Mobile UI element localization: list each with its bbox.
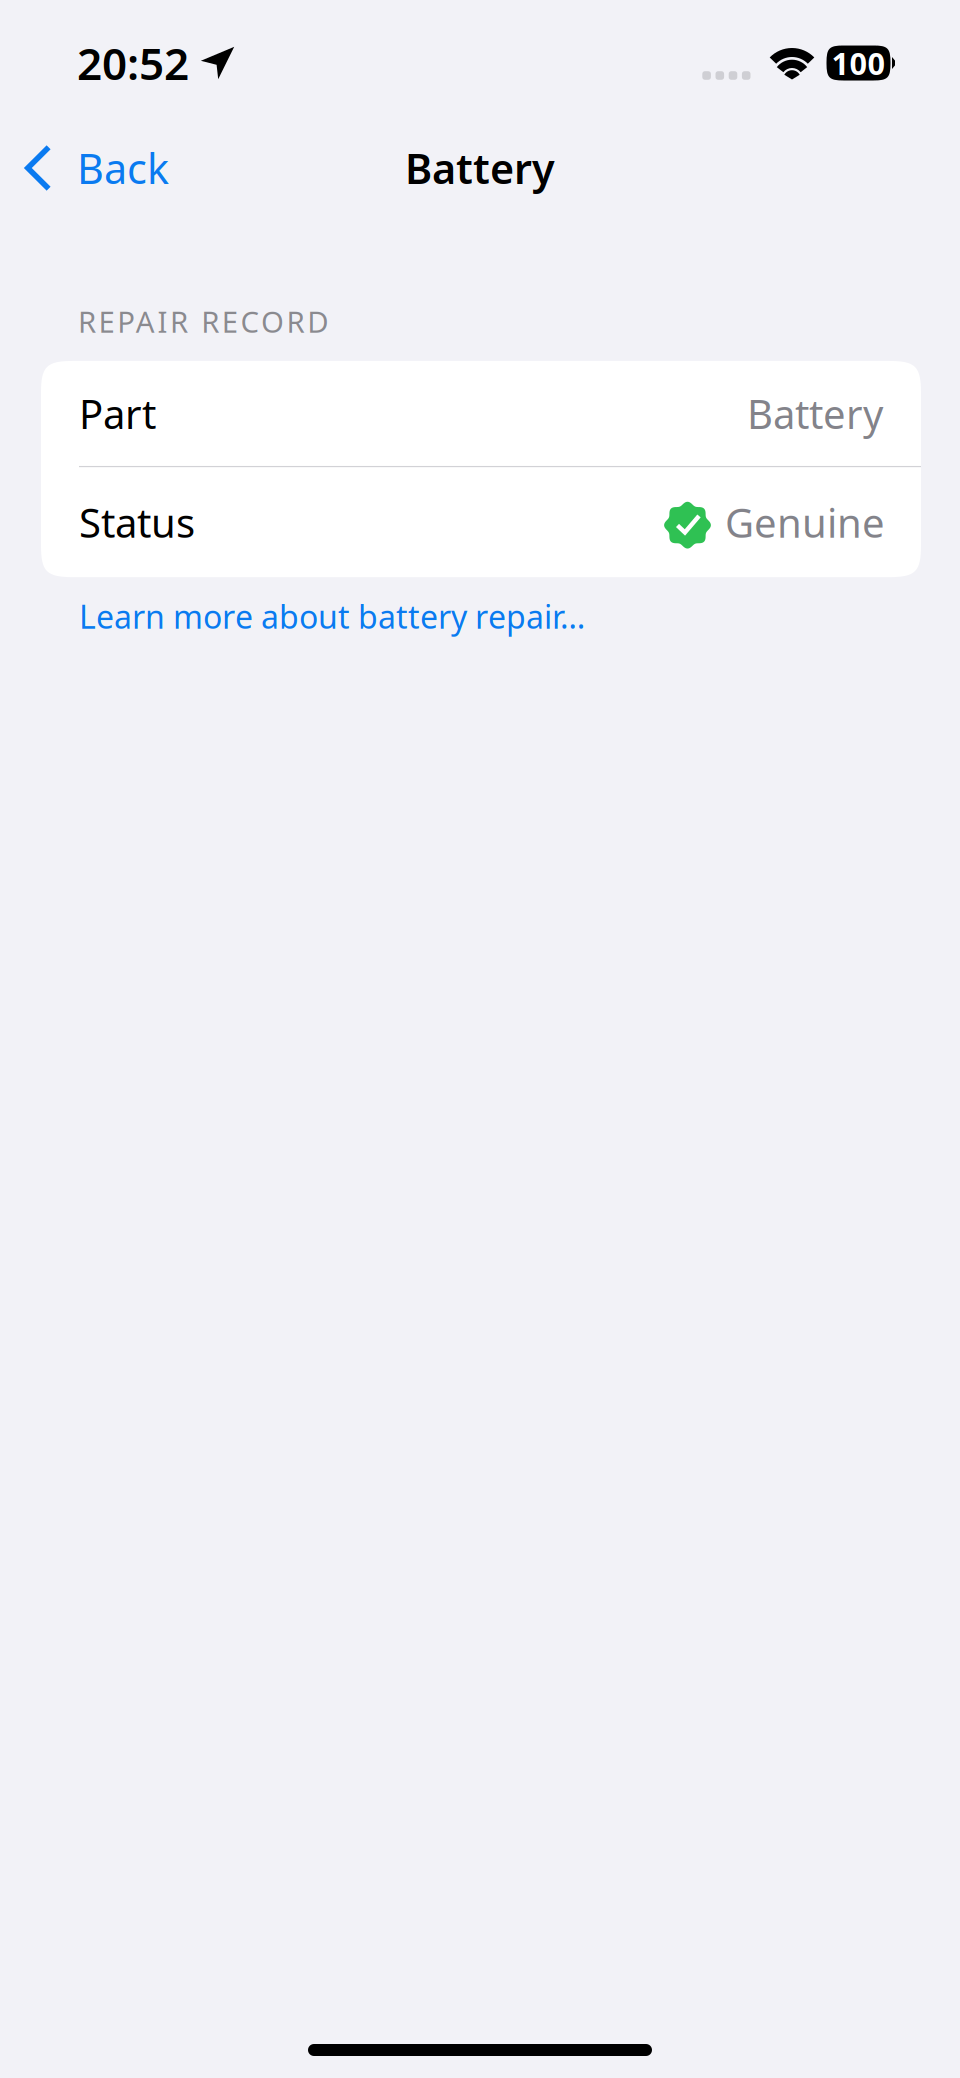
staticText: Battery: [747, 387, 883, 440]
staticText: REPAIR RECORD: [78, 302, 328, 341]
button[interactable]: Back: [0, 132, 187, 204]
staticText: Part: [79, 387, 156, 440]
staticText: Genuine: [725, 496, 885, 549]
staticText: Back: [77, 141, 169, 195]
staticText: Learn more about battery repair…: [79, 595, 585, 638]
button[interactable]: Learn more about battery repair…: [0, 589, 625, 644]
staticText: 20:52: [77, 34, 189, 92]
staticText: Battery: [405, 141, 555, 195]
staticText: Status: [79, 496, 195, 549]
staticText: 100: [831, 43, 885, 83]
